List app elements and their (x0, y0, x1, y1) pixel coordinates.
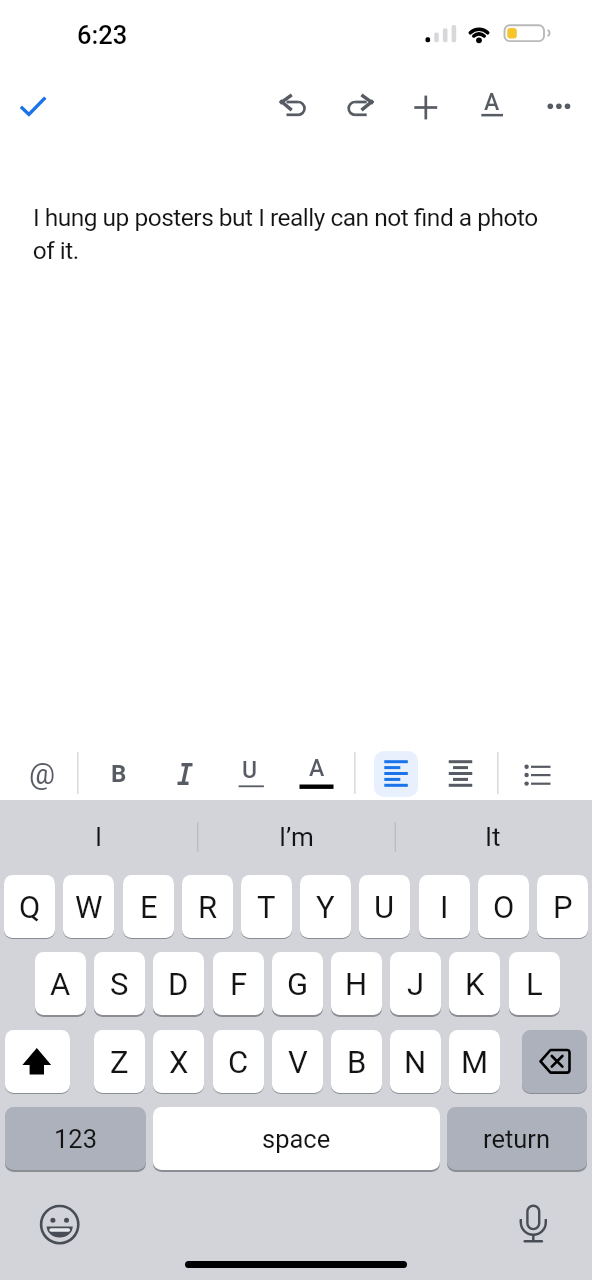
button[interactable] (38, 1203, 82, 1247)
staticText: C (228, 1044, 249, 1080)
button[interactable] (541, 91, 577, 123)
button[interactable] (522, 1030, 587, 1093)
button[interactable]: V (272, 1030, 323, 1093)
button[interactable]: C (213, 1030, 264, 1093)
staticText: M (461, 1044, 489, 1080)
staticText: I (95, 822, 103, 852)
button[interactable]: S (94, 952, 145, 1015)
staticText: I hung up posters but I really can not f… (33, 203, 538, 232)
staticText: H (345, 966, 368, 1002)
staticText: 123 (54, 1124, 97, 1154)
staticText: O (493, 889, 515, 925)
button[interactable]: T (241, 875, 292, 938)
button[interactable]: Q (4, 875, 55, 938)
staticText: return (483, 1124, 551, 1154)
button[interactable]: A (299, 756, 335, 792)
button[interactable]: P (537, 875, 588, 938)
button[interactable]: L (509, 952, 560, 1015)
staticText: @ (29, 757, 56, 791)
button[interactable]: It (404, 813, 582, 861)
staticText: U (242, 757, 258, 784)
button[interactable]: G (272, 952, 323, 1015)
button[interactable]: 123 (5, 1107, 146, 1170)
staticText: U (374, 889, 395, 925)
staticText: Q (19, 889, 41, 925)
staticText: It (485, 822, 501, 852)
button[interactable]: H (331, 952, 382, 1015)
button[interactable]: Z (94, 1030, 145, 1093)
button[interactable]: X (153, 1030, 204, 1093)
staticText: W (75, 889, 103, 925)
staticText: D (168, 966, 189, 1002)
button[interactable]: I (10, 813, 188, 861)
staticText: P (553, 889, 573, 925)
button[interactable]: F (213, 952, 264, 1015)
staticText: G (287, 966, 309, 1002)
button[interactable]: N (390, 1030, 441, 1093)
staticText: I’m (279, 822, 314, 852)
staticText: L (526, 966, 543, 1002)
staticText: B (111, 760, 127, 788)
staticText: N (404, 1044, 427, 1080)
staticText: F (230, 966, 248, 1002)
button[interactable]: J (390, 952, 441, 1015)
button[interactable]: U (232, 756, 268, 792)
button[interactable]: Y (300, 875, 351, 938)
staticText: S (110, 966, 129, 1002)
button[interactable] (409, 90, 443, 124)
button[interactable]: I’m (207, 813, 385, 861)
staticText: T (257, 889, 276, 925)
button[interactable]: O (478, 875, 529, 938)
button[interactable]: B (101, 756, 137, 792)
staticText: A (309, 755, 325, 782)
button[interactable] (374, 751, 418, 797)
staticText: A (484, 89, 500, 116)
staticText: 6:23 (77, 20, 128, 50)
staticText: Z (110, 1044, 129, 1080)
button[interactable]: I (419, 875, 470, 938)
staticText: E (140, 889, 158, 925)
button[interactable] (277, 90, 311, 124)
button[interactable]: E (123, 875, 174, 938)
button[interactable] (167, 756, 203, 792)
staticText: R (198, 889, 218, 925)
staticText: of it. (33, 236, 79, 265)
button[interactable] (511, 1198, 555, 1248)
button[interactable] (518, 756, 554, 792)
staticText: space (262, 1124, 331, 1154)
button[interactable] (5, 1030, 70, 1093)
staticText: A (50, 966, 71, 1002)
button[interactable]: W (63, 875, 114, 938)
button[interactable]: return (447, 1107, 587, 1170)
button[interactable]: A (35, 952, 86, 1015)
button[interactable]: @ (24, 756, 60, 792)
staticText: V (288, 1044, 308, 1080)
button[interactable]: R (182, 875, 233, 938)
staticText: I (440, 889, 449, 925)
button[interactable] (16, 91, 50, 123)
button[interactable]: space (153, 1107, 440, 1170)
button[interactable]: K (449, 952, 500, 1015)
staticText: Y (316, 889, 335, 925)
button[interactable]: M (449, 1030, 500, 1093)
staticText: K (465, 966, 485, 1002)
button[interactable]: U (359, 875, 410, 938)
button[interactable] (342, 90, 376, 124)
button[interactable]: A (475, 88, 509, 124)
staticText: B (347, 1044, 367, 1080)
button[interactable] (438, 751, 483, 797)
button[interactable]: D (153, 952, 204, 1015)
staticText: X (169, 1044, 189, 1080)
staticText: J (407, 966, 425, 1002)
button[interactable]: B (331, 1030, 382, 1093)
